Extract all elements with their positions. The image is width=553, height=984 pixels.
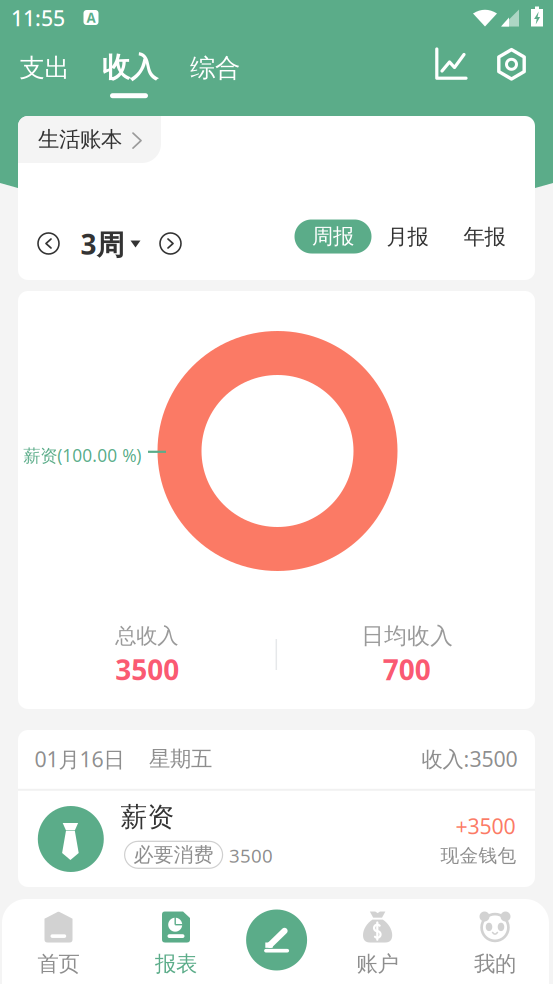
staticText: 首页 xyxy=(37,951,79,977)
button[interactable]: Previous period xyxy=(31,226,65,260)
button[interactable]: 综合 xyxy=(182,46,248,90)
staticText: 星期五 xyxy=(149,746,212,772)
staticText: 综合 xyxy=(190,52,240,83)
staticText: 11:55 xyxy=(11,4,65,32)
staticText: A xyxy=(86,9,95,26)
button[interactable]: 月报 xyxy=(377,220,437,254)
button[interactable]: Next period xyxy=(153,226,187,260)
button[interactable]: 薪资 xyxy=(18,790,535,887)
staticText: 周报 xyxy=(312,223,354,250)
button[interactable]: 账户 xyxy=(318,899,438,984)
staticText: 3500 xyxy=(115,651,179,688)
staticText: 年报 xyxy=(463,224,505,250)
staticText: 支出 xyxy=(19,52,69,83)
button[interactable]: 收入 xyxy=(97,45,163,89)
staticText: 日均收入 xyxy=(361,622,453,650)
staticText: 月报 xyxy=(386,224,428,250)
button[interactable]: 年报 xyxy=(454,220,514,254)
staticText: 薪资 xyxy=(120,801,174,834)
button[interactable]: 周报 xyxy=(294,219,371,253)
staticText: 700 xyxy=(383,651,431,688)
staticText: 报表 xyxy=(155,951,197,977)
button[interactable]: 支出 xyxy=(11,46,77,90)
button[interactable]: Trends xyxy=(428,42,472,86)
button[interactable]: 我的 xyxy=(437,899,552,984)
staticText: 01月16日 xyxy=(34,745,124,773)
button[interactable]: 报表 xyxy=(116,899,236,984)
button[interactable]: 首页 xyxy=(0,899,116,984)
staticText: 总收入 xyxy=(115,623,178,649)
button[interactable]: Settings xyxy=(489,42,533,86)
button[interactable]: Add record xyxy=(246,909,307,970)
staticText: 我的 xyxy=(474,951,516,977)
button[interactable]: 生活账本 xyxy=(18,116,161,163)
staticText: 生活账本 xyxy=(38,126,122,153)
staticText: 3周 xyxy=(80,225,124,263)
staticText: 现金钱包 xyxy=(440,844,516,867)
staticText: 账户 xyxy=(357,951,399,977)
staticText: 3500 xyxy=(229,843,273,868)
staticText: 薪资(100.00 %) xyxy=(23,444,141,467)
button[interactable]: 3周 xyxy=(80,227,140,261)
staticText: 必要消费 xyxy=(134,842,214,867)
staticText: 收入:3500 xyxy=(422,744,518,773)
staticText: 收入 xyxy=(102,50,158,85)
staticText: +3500 xyxy=(456,812,516,840)
